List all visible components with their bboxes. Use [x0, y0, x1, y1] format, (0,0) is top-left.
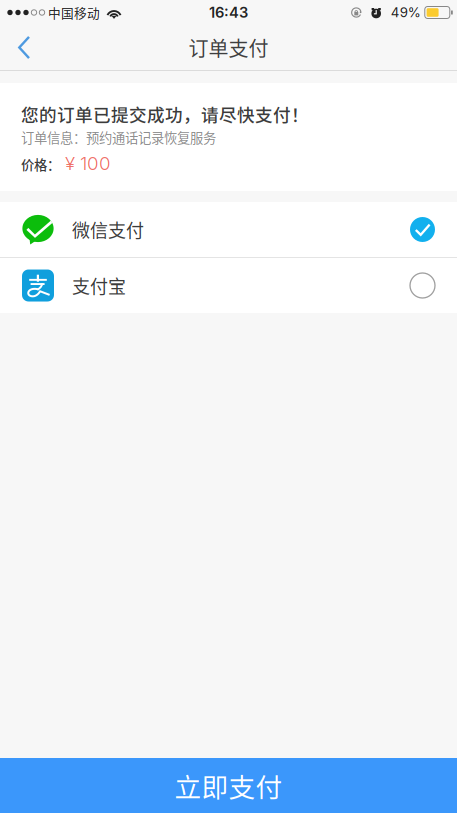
button[interactable]: Back [0, 25, 48, 70]
staticText: ¥ 100 [65, 152, 111, 174]
staticText: 支付宝 [72, 272, 126, 299]
staticText: 中国移动 [48, 3, 100, 22]
button[interactable]: 微信支付 [0, 202, 457, 257]
staticText: 您的订单已提交成功，请尽快支付！ [21, 101, 309, 126]
staticText: 订单支付 [188, 33, 268, 62]
staticText: 立即支付 [174, 766, 282, 805]
staticText: 49% [391, 4, 421, 20]
staticText: 订单信息：预约通话记录恢复服务 [21, 127, 216, 147]
staticText: 价格： [21, 154, 60, 174]
button[interactable]: 支付宝 [0, 258, 457, 313]
staticText: 微信支付 [72, 216, 144, 243]
button[interactable]: 立即支付 [0, 758, 457, 813]
staticText: 16:43 [209, 4, 248, 21]
